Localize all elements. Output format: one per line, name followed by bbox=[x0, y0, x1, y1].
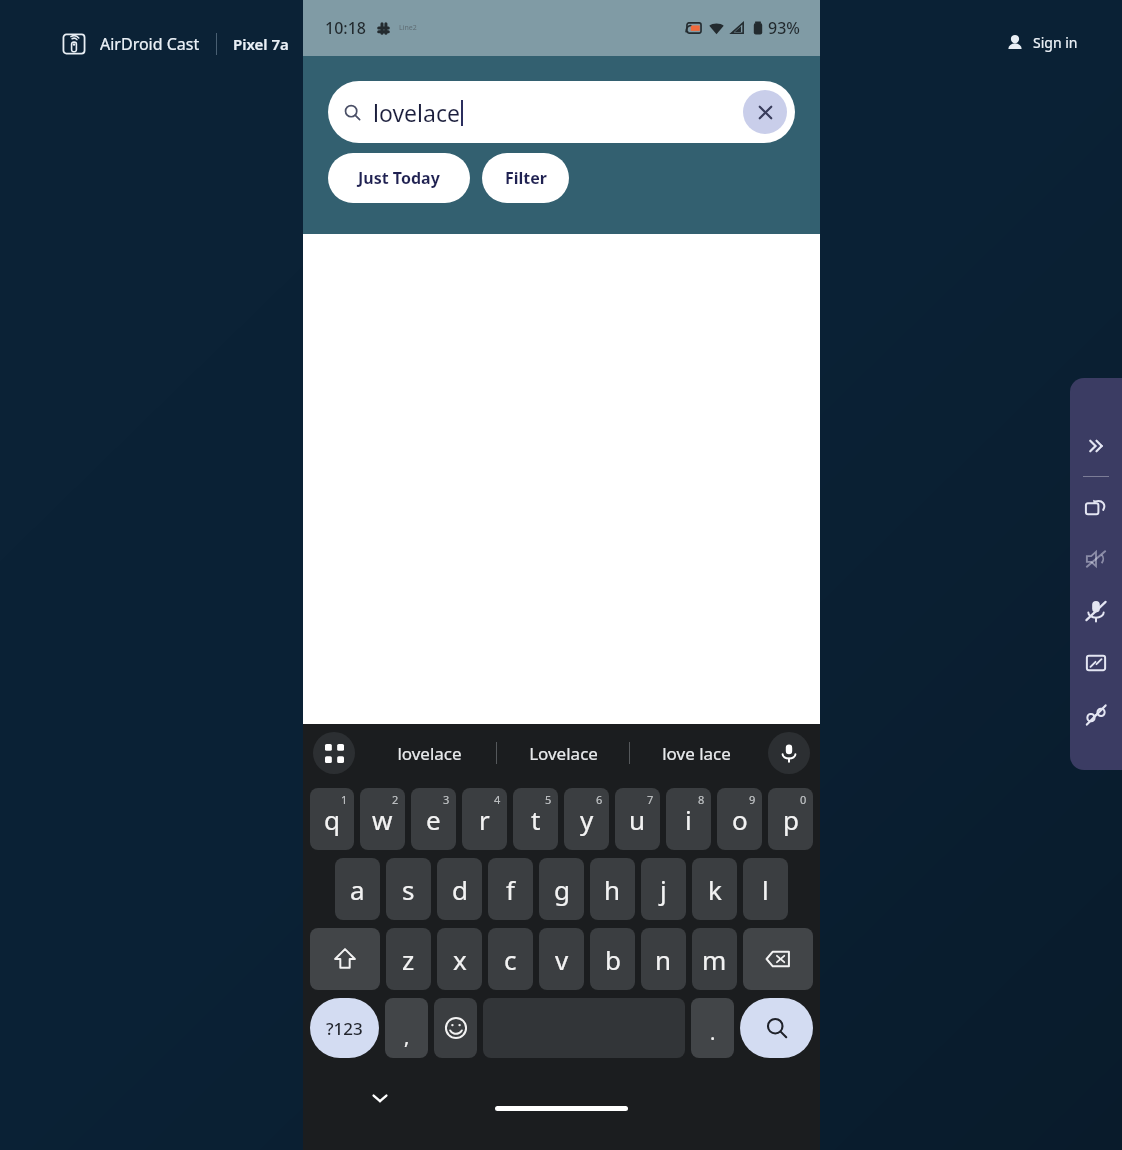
button[interactable]: Search bbox=[740, 998, 813, 1058]
staticText: , bbox=[404, 1023, 410, 1050]
staticText: f bbox=[506, 872, 515, 907]
staticText: z bbox=[402, 942, 415, 977]
staticText: love lace bbox=[662, 742, 731, 765]
button[interactable]: d bbox=[437, 858, 482, 920]
button[interactable]: Sign in bbox=[1002, 30, 1082, 55]
button[interactable]: Lovelace bbox=[497, 724, 629, 782]
staticText: ?123 bbox=[326, 1017, 363, 1040]
button[interactable]: s bbox=[386, 858, 431, 920]
staticText: 93% bbox=[768, 17, 800, 39]
button[interactable]: x bbox=[437, 928, 482, 990]
staticText: r bbox=[479, 802, 490, 837]
button[interactable]: Expand bbox=[1076, 426, 1116, 466]
button[interactable]: Emoji bbox=[434, 998, 477, 1058]
button[interactable]: Mute bbox=[1076, 539, 1116, 579]
staticText: 2 bbox=[392, 792, 399, 807]
staticText: e bbox=[426, 802, 441, 837]
staticText: lovelace bbox=[373, 97, 460, 128]
staticText: 3 bbox=[443, 792, 450, 807]
staticText: 9 bbox=[749, 792, 756, 807]
button[interactable]: Fullscreen bbox=[1076, 643, 1116, 683]
staticText: a bbox=[350, 872, 365, 907]
button[interactable]: w bbox=[360, 788, 405, 850]
staticText: 6 bbox=[596, 792, 603, 807]
staticText: Lovelace bbox=[529, 742, 598, 765]
button[interactable]: r bbox=[462, 788, 507, 850]
button[interactable]: g bbox=[539, 858, 584, 920]
button[interactable]: lovelace bbox=[328, 81, 795, 143]
button[interactable]: p bbox=[768, 788, 813, 850]
button[interactable]: i bbox=[666, 788, 711, 850]
staticText: 5 bbox=[545, 792, 552, 807]
button[interactable]: Comma bbox=[385, 998, 428, 1058]
button[interactable]: h bbox=[590, 858, 635, 920]
staticText: w bbox=[372, 802, 393, 837]
button[interactable]: z bbox=[386, 928, 431, 990]
button[interactable]: Disconnect bbox=[1076, 695, 1116, 735]
staticText: c bbox=[504, 942, 517, 977]
staticText: k bbox=[708, 872, 722, 907]
staticText: lovelace bbox=[397, 742, 462, 765]
button[interactable]: u bbox=[615, 788, 660, 850]
button[interactable]: Voice input bbox=[768, 732, 810, 774]
button[interactable]: Shift bbox=[310, 928, 380, 990]
button[interactable]: q bbox=[310, 788, 354, 850]
button[interactable]: j bbox=[641, 858, 686, 920]
staticText: Just Today bbox=[358, 167, 440, 189]
staticText: s bbox=[402, 872, 415, 907]
button[interactable]: l bbox=[743, 858, 788, 920]
staticText: q bbox=[324, 802, 340, 837]
button[interactable]: Cast bbox=[60, 30, 88, 58]
staticText: x bbox=[453, 942, 467, 977]
staticText: h bbox=[604, 872, 621, 907]
button[interactable]: n bbox=[641, 928, 686, 990]
staticText: Pixel 7a bbox=[233, 34, 289, 54]
button[interactable]: Hide keyboard bbox=[363, 1081, 397, 1115]
staticText: 4 bbox=[494, 792, 501, 807]
staticText: j bbox=[660, 872, 667, 907]
button[interactable]: Backspace bbox=[743, 928, 813, 990]
staticText: 7 bbox=[647, 792, 654, 807]
staticText: o bbox=[732, 802, 748, 837]
staticText: b bbox=[605, 942, 621, 977]
staticText: p bbox=[783, 802, 799, 837]
staticText: i bbox=[685, 802, 692, 837]
staticText: . bbox=[710, 1019, 716, 1046]
button[interactable]: f bbox=[488, 858, 533, 920]
staticText: y bbox=[580, 802, 594, 837]
staticText: 10:18 bbox=[325, 17, 366, 39]
button[interactable]: m bbox=[692, 928, 737, 990]
button[interactable]: Period bbox=[691, 998, 734, 1058]
button[interactable]: v bbox=[539, 928, 584, 990]
staticText: t bbox=[531, 802, 541, 837]
button[interactable]: lovelace bbox=[363, 724, 496, 782]
button[interactable]: c bbox=[488, 928, 533, 990]
button[interactable]: Clear search bbox=[743, 90, 787, 134]
button[interactable]: Just Today bbox=[328, 153, 470, 203]
button[interactable]: e bbox=[411, 788, 456, 850]
staticText: u bbox=[629, 802, 646, 837]
button[interactable]: k bbox=[692, 858, 737, 920]
button[interactable]: a bbox=[335, 858, 380, 920]
button[interactable]: Keyboard options bbox=[313, 732, 355, 774]
button[interactable]: Rotate bbox=[1076, 487, 1116, 527]
staticText: Line2 bbox=[399, 23, 417, 33]
staticText: Sign in bbox=[1033, 33, 1078, 52]
staticText: m bbox=[702, 942, 727, 977]
button[interactable]: Filter bbox=[482, 153, 569, 203]
staticText: 8 bbox=[698, 792, 705, 807]
button[interactable]: love lace bbox=[630, 724, 762, 782]
staticText: d bbox=[452, 872, 468, 907]
staticText: l bbox=[762, 872, 769, 907]
button[interactable]: b bbox=[590, 928, 635, 990]
button[interactable]: t bbox=[513, 788, 558, 850]
staticText: n bbox=[655, 942, 672, 977]
staticText: 1 bbox=[341, 792, 348, 807]
staticText: 0 bbox=[800, 792, 807, 807]
button[interactable]: Microphone off bbox=[1076, 591, 1116, 631]
button[interactable]: ?123 bbox=[310, 998, 379, 1058]
staticText: Filter bbox=[505, 167, 547, 189]
button[interactable]: y bbox=[564, 788, 609, 850]
button[interactable]: o bbox=[717, 788, 762, 850]
